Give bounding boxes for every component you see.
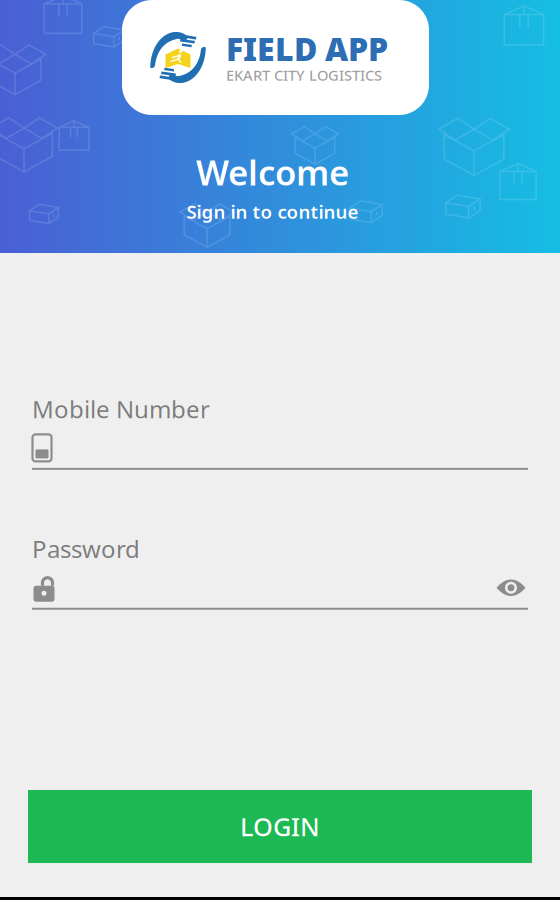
staticText: Sign in to continue xyxy=(186,199,358,224)
button[interactable]: Show password xyxy=(494,574,528,602)
staticText: FIELD APP xyxy=(226,27,388,70)
staticText: LOGIN xyxy=(240,810,320,843)
button[interactable]: LOGIN xyxy=(28,790,532,863)
staticText: Welcome xyxy=(196,149,349,195)
staticText: Mobile Number xyxy=(32,393,210,425)
staticText: EKART CITY LOGISTICS xyxy=(226,65,382,85)
staticText: Password xyxy=(32,533,140,565)
